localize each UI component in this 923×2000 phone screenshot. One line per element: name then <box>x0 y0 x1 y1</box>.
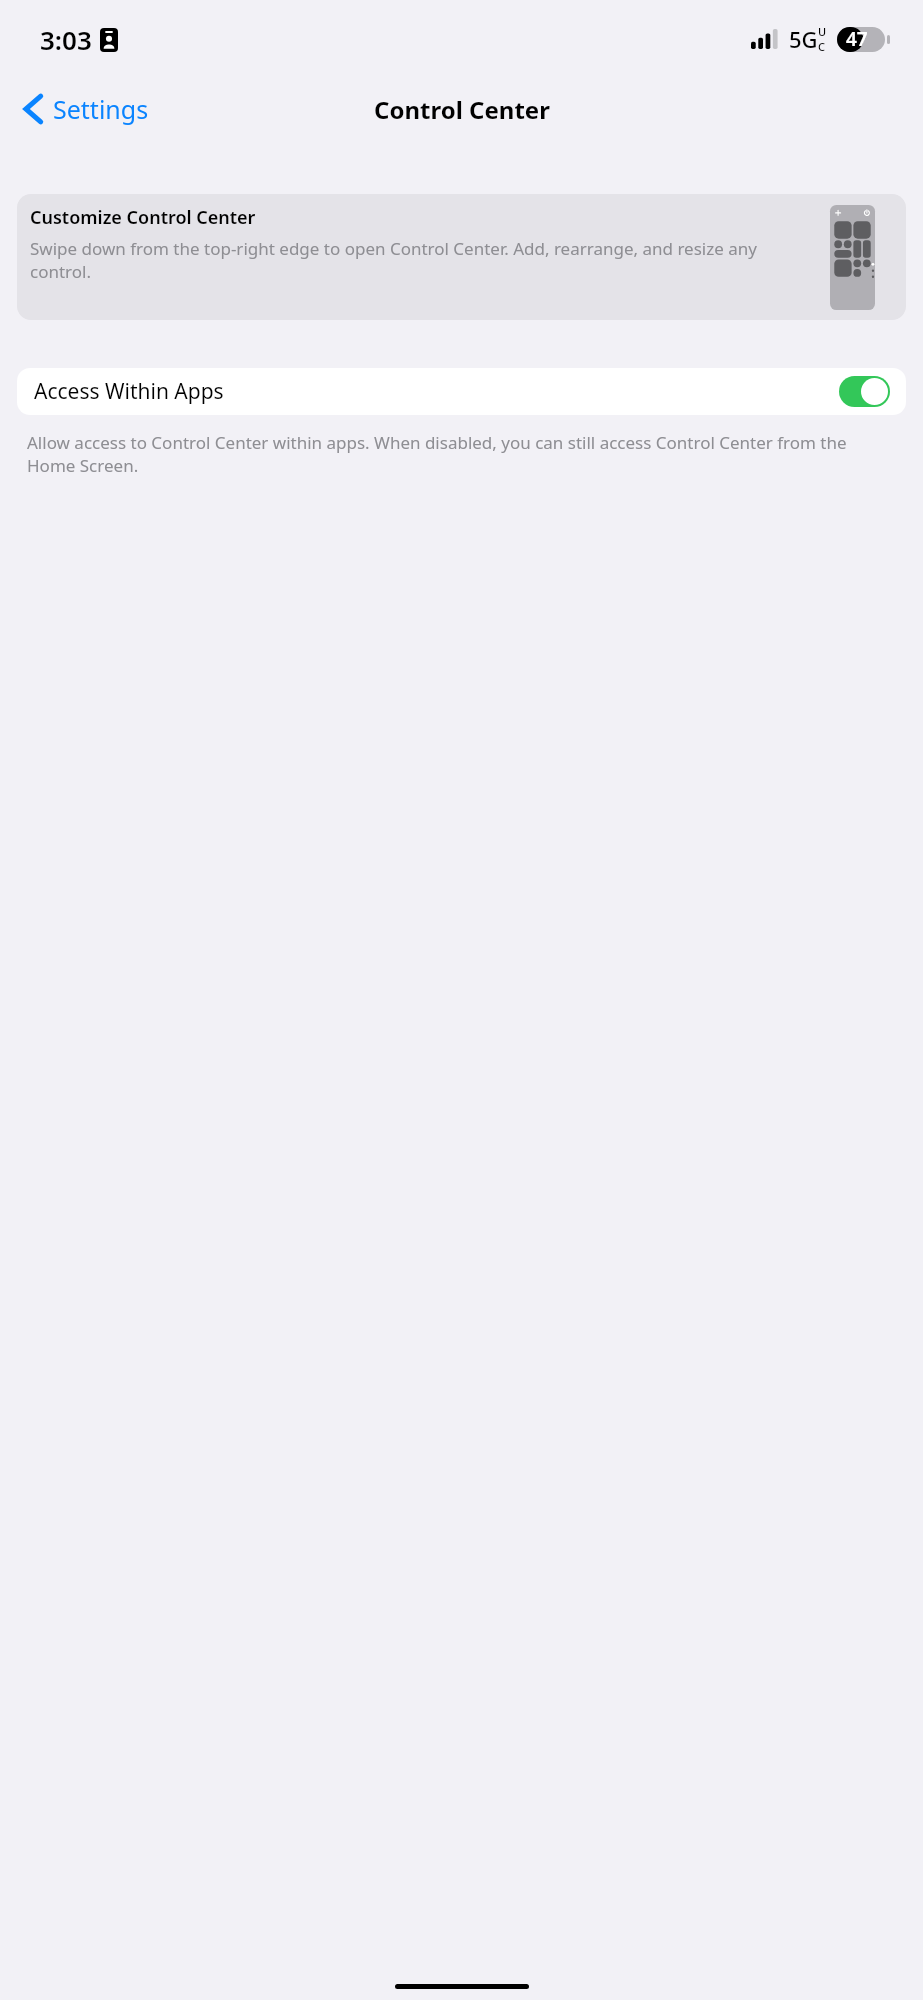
staticText: 3:03 <box>40 22 92 57</box>
other: Access Within Apps toggle, on <box>839 376 890 407</box>
staticText: Access Within Apps <box>34 377 224 406</box>
staticText: 5G <box>789 24 818 54</box>
staticText: Swipe down from the top-right edge to op… <box>30 237 778 283</box>
button[interactable]: Access Within Apps <box>17 368 906 415</box>
staticText: Allow access to Control Center within ap… <box>27 431 897 477</box>
staticText: U <box>818 24 827 39</box>
staticText: C <box>818 39 825 54</box>
staticText: Control Center <box>374 93 550 126</box>
staticText: Customize Control Center <box>30 205 256 230</box>
button[interactable]: Customize Control Center <box>17 194 906 320</box>
button[interactable]: Settings <box>0 86 163 132</box>
staticText: 47 <box>846 26 868 52</box>
staticText: Settings <box>53 92 149 126</box>
